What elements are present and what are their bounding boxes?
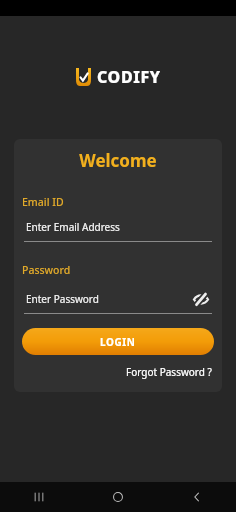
staticText: CODIFY [97, 66, 161, 88]
button[interactable]: Back [157, 482, 236, 512]
staticText: Email ID [22, 195, 64, 209]
button[interactable]: Home [78, 482, 157, 512]
button[interactable]: Enter Email Address [24, 220, 212, 242]
button[interactable]: Show password [190, 288, 212, 310]
staticText: Enter Password [26, 292, 190, 306]
button[interactable]: Forgot Password ? [126, 364, 222, 380]
button[interactable]: Enter Password [24, 288, 212, 314]
button[interactable]: LOGIN [22, 328, 214, 355]
staticText: Welcome [14, 149, 222, 172]
staticText: Forgot Password ? [126, 365, 212, 379]
staticText: LOGIN [100, 335, 136, 349]
button[interactable]: Recent apps [0, 482, 78, 512]
staticText: Enter Email Address [26, 220, 120, 234]
staticText: Password [22, 263, 71, 277]
